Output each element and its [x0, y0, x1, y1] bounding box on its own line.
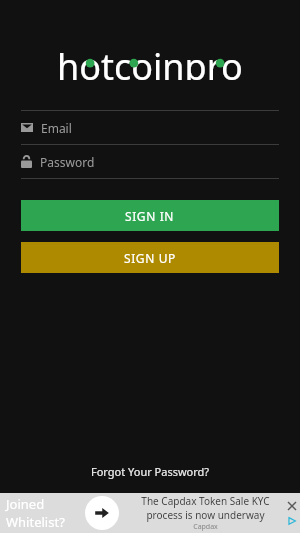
- staticText: process is now underway: [146, 508, 265, 522]
- staticText: Email: [41, 120, 72, 136]
- button[interactable]: SIGN UP: [21, 242, 279, 273]
- button[interactable]: Email: [0, 111, 300, 144]
- button[interactable]: Close ad: [286, 500, 298, 512]
- button[interactable]: Ad choices: [286, 515, 298, 527]
- staticText: Joined: [6, 495, 45, 513]
- staticText: Password: [40, 154, 95, 170]
- button[interactable]: Forgot Your Password?: [0, 458, 300, 485]
- button[interactable]: SIGN IN: [21, 200, 279, 231]
- staticText: Capdax: [193, 522, 218, 532]
- staticText: SIGN IN: [125, 208, 175, 224]
- staticText: Whitelist?: [6, 513, 65, 531]
- button[interactable]: Joined: [0, 493, 300, 533]
- staticText: The Capdax Token Sale KYC: [141, 494, 270, 508]
- staticText: hotcoinpro: [57, 42, 243, 80]
- button[interactable]: Password: [0, 145, 300, 178]
- staticText: Forgot Your Password?: [91, 464, 210, 479]
- staticText: SIGN UP: [124, 250, 176, 266]
